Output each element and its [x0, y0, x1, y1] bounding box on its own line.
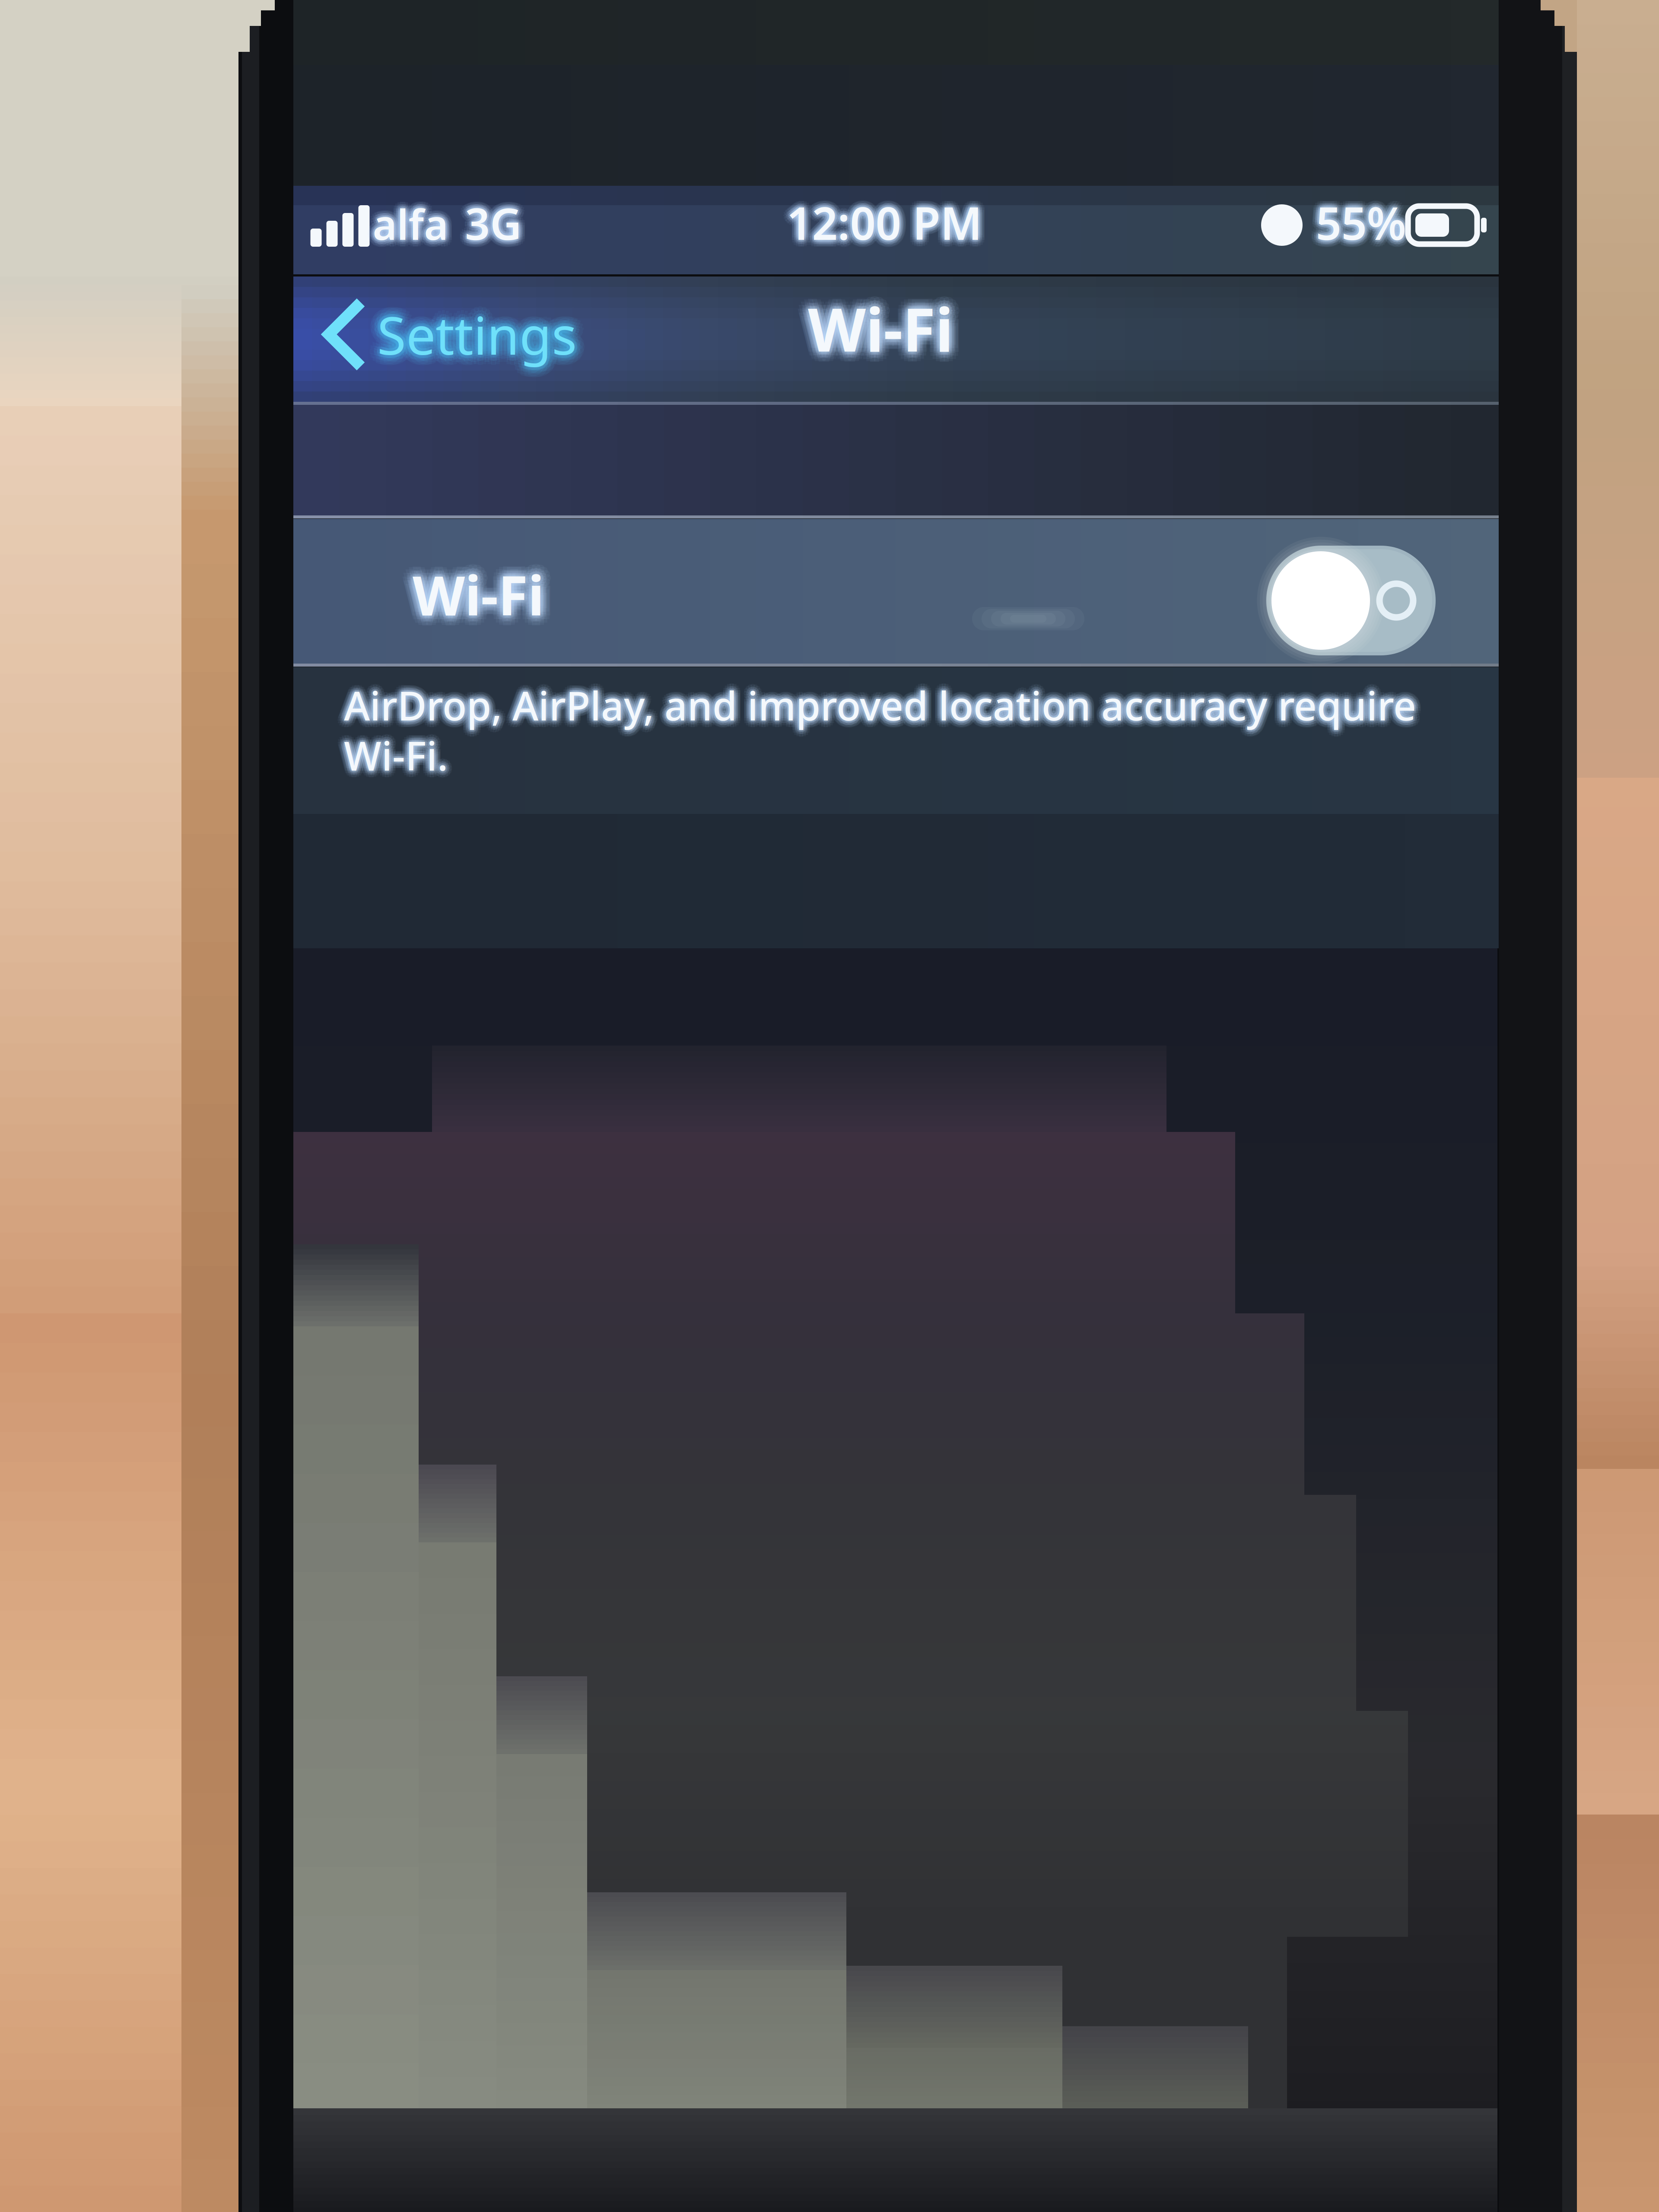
staticText: 55% [1318, 189, 1408, 249]
staticText: Settings [371, 301, 571, 370]
staticText: Wi-Fi. [349, 734, 453, 786]
staticText: Wi-Fi [416, 559, 547, 630]
staticText: Wi-Fi. [343, 731, 447, 783]
staticText: 3G [464, 198, 521, 256]
staticText: 55% [1322, 195, 1412, 255]
staticText: 55% [1321, 188, 1411, 248]
button[interactable]: Wi-Fi, off [1266, 534, 1497, 655]
staticText: Wi-Fi. [341, 735, 445, 788]
staticText: Settings [370, 307, 570, 376]
staticText: Wi-Fi [402, 559, 534, 630]
staticText: 55% [1316, 193, 1406, 252]
staticText: 12:00 PM [788, 194, 983, 254]
button[interactable]: Wi-Fi [293, 522, 1497, 667]
staticText: Wi-Fi [811, 290, 956, 370]
staticText: 12:00 PM [782, 188, 977, 248]
staticText: 3G [464, 196, 521, 254]
staticText: Wi-Fi [420, 551, 551, 623]
staticText: Wi-Fi. [346, 728, 450, 781]
staticText: Wi-Fi [413, 562, 544, 634]
staticText: alfa [375, 193, 451, 248]
staticText: Settings [380, 301, 579, 371]
staticText: Wi-Fi [413, 559, 544, 630]
staticText: alfa [373, 203, 448, 258]
staticText: Wi-Fi [809, 282, 954, 362]
staticText: Settings [374, 298, 574, 368]
staticText: Wi-Fi [414, 565, 545, 637]
staticText: Settings [374, 301, 574, 371]
staticText: Wi-Fi [818, 289, 963, 368]
staticText: 3G [465, 194, 522, 252]
staticText: 12:00 PM [787, 189, 983, 248]
staticText: Settings [383, 301, 583, 370]
staticText: alfa [369, 197, 444, 252]
staticText: Settings [382, 303, 582, 373]
staticText: Wi-Fi [403, 562, 535, 634]
staticText: alfa [366, 199, 442, 254]
staticText: Wi-Fi. [342, 730, 446, 783]
staticText: 3G [458, 194, 515, 252]
staticText: 3G [470, 189, 527, 247]
staticText: Wi-Fi [422, 562, 553, 634]
staticText: 12:00 PM [789, 186, 985, 246]
staticText: alfa [371, 195, 446, 250]
staticText: Settings [382, 296, 582, 366]
staticText: Wi-Fi [416, 568, 548, 640]
staticText: 3G [469, 195, 526, 253]
staticText: AirDrop, AirPlay, and improved location … [340, 678, 1412, 731]
staticText: Wi-Fi [804, 294, 950, 373]
staticText: Wi-Fi. [344, 736, 448, 788]
staticText: 3G [463, 197, 520, 255]
staticText: 55% [1315, 189, 1405, 248]
staticText: 55% [1311, 197, 1401, 257]
staticText: Wi-Fi [804, 279, 949, 359]
staticText: alfa [375, 196, 450, 251]
staticText: 55% [1317, 194, 1407, 254]
staticText: alfa [374, 198, 449, 253]
staticText: AirDrop, AirPlay, and improved location … [340, 681, 1413, 734]
staticText: AirDrop, AirPlay, and improved location … [345, 677, 1417, 730]
staticText: 55% [1312, 192, 1402, 252]
staticText: 55% [1312, 195, 1403, 255]
staticText: Wi-Fi. [348, 730, 452, 782]
staticText: 55% [1316, 195, 1406, 254]
staticText: Wi-Fi [420, 566, 551, 638]
staticText: Settings [386, 296, 586, 365]
staticText: 3G [459, 196, 516, 255]
staticText: Wi-Fi. [340, 731, 445, 784]
staticText: Wi-Fi [413, 569, 544, 641]
staticText: Wi-Fi [799, 285, 944, 364]
staticText: Wi-Fi [409, 559, 541, 630]
staticText: Settings [376, 297, 575, 366]
staticText: 55% [1310, 195, 1400, 255]
staticText: Wi-Fi. [349, 724, 453, 777]
staticText: Wi-Fi [801, 281, 946, 361]
staticText: Wi-Fi [414, 552, 545, 624]
staticText: Wi-Fi [808, 299, 953, 378]
staticText: AirDrop, AirPlay, and improved location … [342, 680, 1414, 733]
staticText: 3G [465, 201, 522, 259]
staticText: Settings [384, 292, 584, 362]
staticText: 12:00 PM [785, 191, 981, 251]
staticText: AirDrop, AirPlay, and improved location … [343, 675, 1415, 727]
staticText: 55% [1322, 193, 1413, 252]
staticText: Settings [377, 296, 577, 366]
staticText: 55% [1322, 190, 1412, 250]
staticText: Wi-Fi [808, 285, 953, 365]
staticText: alfa [374, 194, 449, 250]
staticText: Wi-Fi [802, 290, 947, 369]
staticText: Settings [381, 305, 580, 374]
staticText: AirDrop, AirPlay, and improved location … [346, 672, 1419, 725]
staticText: 12:00 PM [782, 192, 978, 252]
staticText: AirDrop, AirPlay, and improved location … [347, 676, 1420, 729]
staticText: alfa [373, 192, 449, 247]
staticText: Settings [368, 303, 567, 373]
staticText: 3G [461, 193, 518, 251]
staticText: Wi-Fi [814, 287, 959, 367]
staticText: Wi-Fi [811, 283, 957, 363]
button[interactable]: Settings [294, 278, 598, 391]
staticText: Wi-Fi [416, 564, 547, 636]
staticText: Wi-Fi [416, 549, 548, 621]
staticText: 55% [1314, 194, 1404, 253]
staticText: 3G [462, 188, 519, 246]
